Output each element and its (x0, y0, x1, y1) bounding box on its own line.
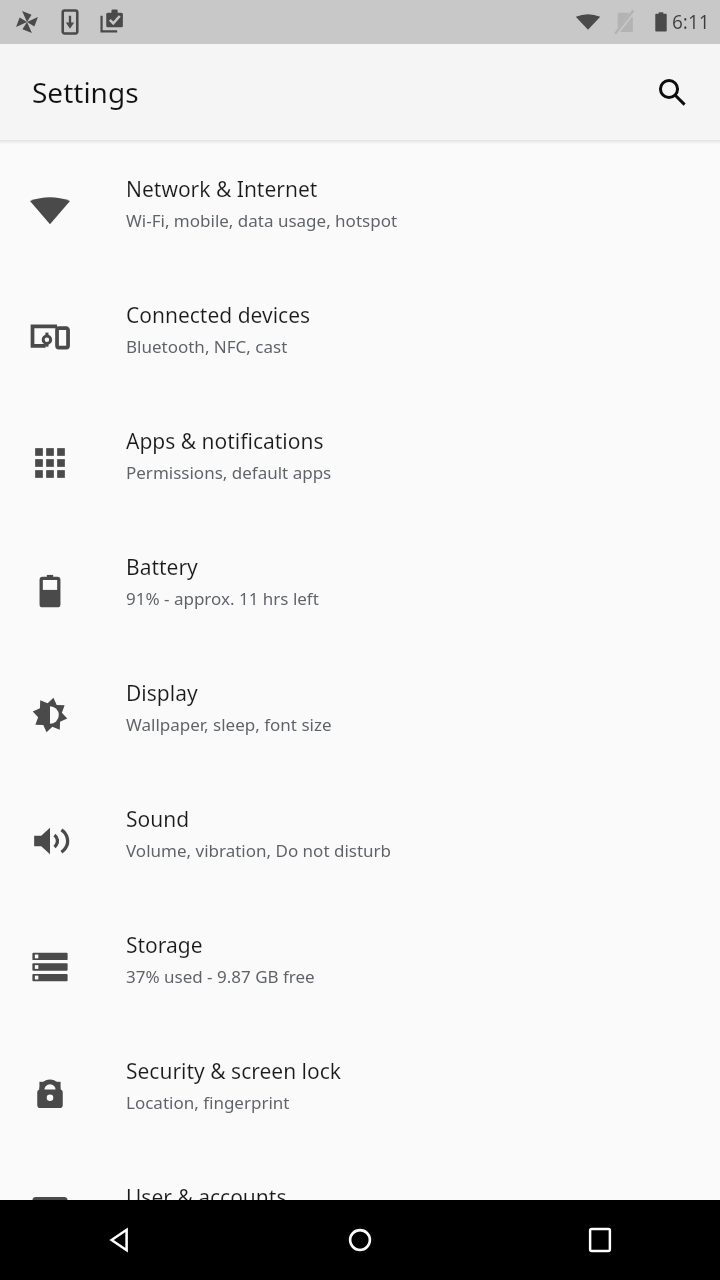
staticText: 91% - approx. 11 hrs left (126, 587, 319, 610)
button[interactable]: Home (240, 1200, 480, 1280)
staticText: Wallpaper, sleep, font size (126, 713, 332, 736)
button[interactable]: Apps & notifications (0, 400, 720, 526)
staticText: Storage (126, 931, 203, 960)
button[interactable]: Display (0, 652, 720, 778)
button[interactable]: Battery (0, 526, 720, 652)
button[interactable]: Sound (0, 778, 720, 904)
staticText: Connected devices (126, 301, 311, 330)
button[interactable]: Security & screen lock (0, 1030, 720, 1156)
button[interactable]: Search settings (644, 64, 700, 120)
button[interactable]: Recent apps (480, 1200, 720, 1280)
staticText: Battery (126, 553, 198, 582)
staticText: Permissions, default apps (126, 461, 332, 484)
button[interactable]: Storage (0, 904, 720, 1030)
staticText: Volume, vibration, Do not disturb (126, 839, 392, 862)
button[interactable]: Back (0, 1200, 240, 1280)
staticText: Settings (32, 73, 139, 111)
staticText: Sound (126, 805, 190, 834)
staticText: 37% used - 9.87 GB free (126, 965, 315, 988)
staticText: Location, fingerprint (126, 1091, 290, 1114)
button[interactable]: User & accounts (0, 1156, 720, 1200)
button[interactable]: Connected devices (0, 274, 720, 400)
staticText: Apps & notifications (126, 427, 324, 456)
staticText: 6:11 (672, 9, 710, 35)
staticText: Wi-Fi, mobile, data usage, hotspot (126, 209, 398, 232)
staticText: Security & screen lock (126, 1057, 342, 1086)
staticText: Display (126, 679, 198, 708)
staticText: Network & Internet (126, 175, 318, 204)
staticText: Bluetooth, NFC, cast (126, 335, 288, 358)
staticText: User & accounts (126, 1183, 287, 1200)
button[interactable]: Network & Internet (0, 148, 720, 274)
